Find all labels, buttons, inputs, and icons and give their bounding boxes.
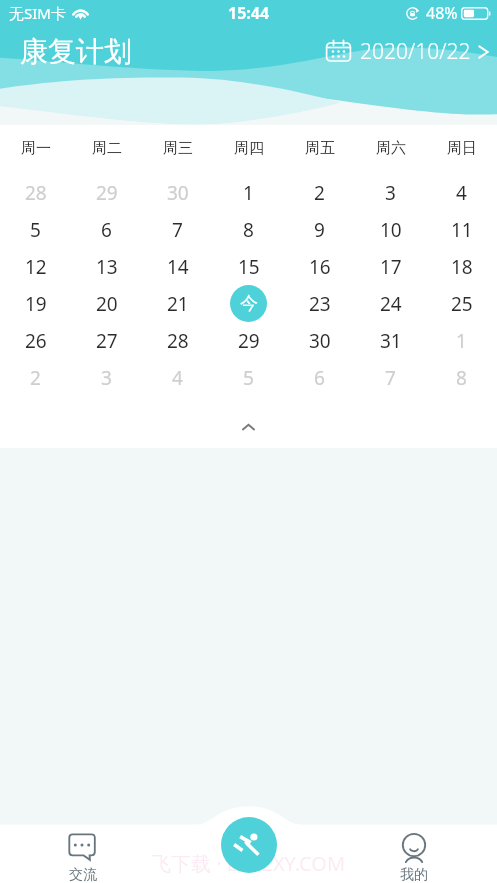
staticText: 3	[385, 180, 396, 206]
staticText: 30	[309, 328, 331, 354]
button[interactable]: 2	[0, 359, 71, 396]
staticText: 5	[30, 217, 41, 243]
staticText: 周四	[234, 139, 264, 158]
staticText: 26	[25, 328, 47, 354]
button[interactable]: 交流	[0, 800, 165, 883]
staticText: 今	[240, 292, 258, 315]
button[interactable]: 23	[284, 285, 355, 322]
button[interactable]: 5	[213, 359, 284, 396]
staticText: 2	[314, 180, 325, 206]
button[interactable]: 8	[426, 359, 497, 396]
button[interactable]: 13	[71, 248, 142, 285]
button[interactable]: 4	[142, 359, 213, 396]
button[interactable]: 4	[426, 174, 497, 211]
staticText: 18	[451, 254, 473, 280]
staticText: 周日	[447, 139, 477, 158]
button[interactable]: 8	[213, 211, 284, 248]
button[interactable]: 19	[0, 285, 71, 322]
staticText: 31	[380, 328, 402, 354]
staticText: 飞下载 · BYFZXY.COM	[151, 850, 346, 877]
staticText: 周二	[92, 139, 122, 158]
button[interactable]: 5	[0, 211, 71, 248]
staticText: 3	[101, 365, 112, 391]
staticText: 周三	[163, 139, 193, 158]
staticText: 1	[456, 328, 467, 354]
button[interactable]: 26	[0, 322, 71, 359]
button[interactable]: 27	[71, 322, 142, 359]
staticText: 21	[167, 291, 189, 317]
button[interactable]: 30	[284, 322, 355, 359]
staticText: 4	[172, 365, 183, 391]
button[interactable]: Collapse calendar	[0, 396, 497, 448]
button[interactable]: 11	[426, 211, 497, 248]
button[interactable]: 3	[355, 174, 426, 211]
staticText: 康复计划	[20, 34, 132, 69]
staticText: 17	[380, 254, 402, 280]
staticText: 6	[101, 217, 112, 243]
button[interactable]: 29	[213, 322, 284, 359]
staticText: 25	[451, 291, 473, 317]
button[interactable]: 6	[284, 359, 355, 396]
button[interactable]: 14	[142, 248, 213, 285]
button[interactable]: 21	[142, 285, 213, 322]
staticText: 周五	[305, 139, 335, 158]
staticText: 13	[96, 254, 118, 280]
button[interactable]: 17	[355, 248, 426, 285]
button[interactable]: 25	[426, 285, 497, 322]
staticText: 29	[238, 328, 260, 354]
button[interactable]: 2020/10/22	[318, 33, 497, 70]
staticText: 6	[314, 365, 325, 391]
button[interactable]: 7	[142, 211, 213, 248]
button[interactable]: 16	[284, 248, 355, 285]
staticText: 7	[172, 217, 183, 243]
staticText: 23	[309, 291, 331, 317]
staticText: 5	[243, 365, 254, 391]
staticText: 交流	[69, 866, 97, 883]
button[interactable]: 31	[355, 322, 426, 359]
button[interactable]: 1	[426, 322, 497, 359]
button[interactable]: 10	[355, 211, 426, 248]
button[interactable]: 28	[0, 174, 71, 211]
button[interactable]: Start exercise	[221, 817, 277, 873]
button[interactable]: 15	[213, 248, 284, 285]
staticText: 8	[243, 217, 254, 243]
staticText: 周一	[21, 139, 51, 158]
staticText: 无SIM卡	[9, 3, 66, 23]
button[interactable]: 6	[71, 211, 142, 248]
staticText: 2	[30, 365, 41, 391]
button[interactable]: 24	[355, 285, 426, 322]
button[interactable]: 28	[142, 322, 213, 359]
button[interactable]: 30	[142, 174, 213, 211]
staticText: 10	[380, 217, 402, 243]
staticText: 27	[96, 328, 118, 354]
staticText: 29	[96, 180, 118, 206]
staticText: 1	[243, 180, 254, 206]
button[interactable]: 29	[71, 174, 142, 211]
staticText: 28	[167, 328, 189, 354]
staticText: 7	[385, 365, 396, 391]
button[interactable]: 1	[213, 174, 284, 211]
staticText: 12	[25, 254, 47, 280]
button[interactable]: 7	[355, 359, 426, 396]
staticText: 周六	[376, 139, 406, 158]
staticText: 11	[451, 217, 473, 243]
staticText: 48%	[426, 2, 458, 24]
staticText: 2020/10/22	[360, 37, 471, 66]
button[interactable]: 20	[71, 285, 142, 322]
staticText: 8	[456, 365, 467, 391]
staticText: 16	[309, 254, 331, 280]
button[interactable]: 18	[426, 248, 497, 285]
staticText: 24	[380, 291, 402, 317]
staticText: 15	[238, 254, 260, 280]
button[interactable]: 12	[0, 248, 71, 285]
button[interactable]: 3	[71, 359, 142, 396]
button[interactable]: 今	[213, 285, 284, 322]
button[interactable]: 我的	[331, 800, 497, 883]
staticText: 30	[167, 180, 189, 206]
staticText: 15:44	[228, 2, 270, 24]
button[interactable]: 9	[284, 211, 355, 248]
staticText: 14	[167, 254, 189, 280]
button[interactable]: 2	[284, 174, 355, 211]
staticText: 4	[456, 180, 467, 206]
staticText: 28	[25, 180, 47, 206]
